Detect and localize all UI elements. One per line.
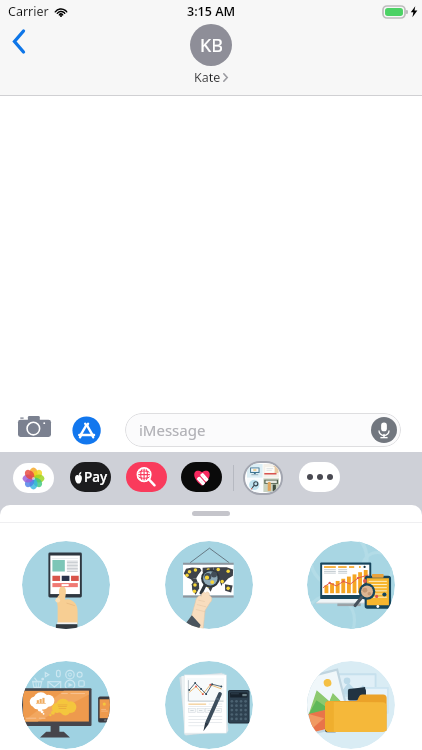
- button[interactable]: Apple Pay: [70, 462, 111, 492]
- button[interactable]: Images: [126, 462, 167, 492]
- button[interactable]: More apps: [299, 462, 340, 492]
- button[interactable]: Camera: [16, 415, 52, 437]
- button[interactable]: Back: [1, 23, 37, 59]
- button[interactable]: iMessage: [125, 413, 401, 447]
- button[interactable]: Sticker 3: [307, 541, 395, 629]
- staticText: Carrier: [8, 3, 49, 20]
- button[interactable]: Sticker 1: [22, 541, 110, 629]
- staticText: Pay: [84, 468, 108, 486]
- button[interactable]: KB: [190, 24, 232, 86]
- button[interactable]: Digital Touch: [181, 462, 222, 492]
- button[interactable]: Sticker 2: [165, 541, 253, 629]
- staticText: 3:15 AM: [187, 3, 236, 20]
- button[interactable]: App Store: [72, 416, 101, 445]
- button[interactable]: Sticker 4: [22, 661, 110, 749]
- button[interactable]: Sticker 6: [307, 661, 395, 749]
- staticText: iMessage: [139, 420, 206, 440]
- button[interactable]: Voice message: [371, 417, 397, 443]
- staticText: KB: [200, 33, 223, 58]
- button[interactable]: Sticker pack: [245, 463, 281, 493]
- button[interactable]: Photos: [13, 463, 54, 493]
- button[interactable]: Sticker 5: [165, 661, 253, 749]
- staticText: Kate: [194, 69, 221, 86]
